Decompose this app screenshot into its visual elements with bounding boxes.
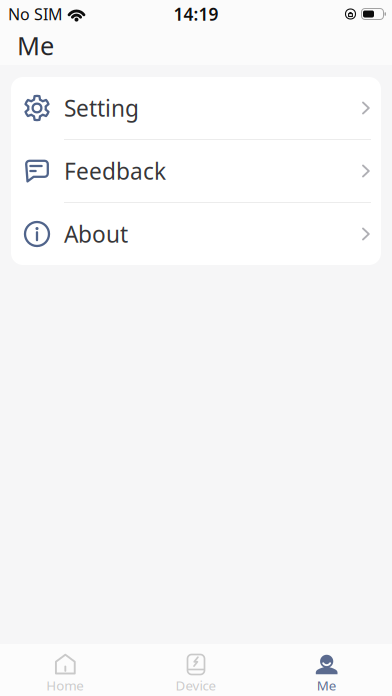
button[interactable]: Feedback	[11, 140, 381, 202]
staticText: About	[64, 219, 128, 249]
staticText: Setting	[64, 93, 139, 123]
staticText: Home	[46, 676, 84, 694]
staticText: Me	[17, 29, 54, 62]
staticText: 14:19	[173, 2, 218, 25]
button[interactable]: About	[11, 203, 381, 265]
button[interactable]: Device	[131, 654, 261, 694]
staticText: Device	[175, 676, 216, 694]
staticText: Me	[317, 676, 337, 694]
button[interactable]: Setting	[11, 77, 381, 139]
staticText: No SIM	[8, 3, 63, 25]
button[interactable]: Home	[0, 654, 131, 694]
button[interactable]: Me	[261, 654, 392, 694]
staticText: Feedback	[64, 156, 166, 186]
